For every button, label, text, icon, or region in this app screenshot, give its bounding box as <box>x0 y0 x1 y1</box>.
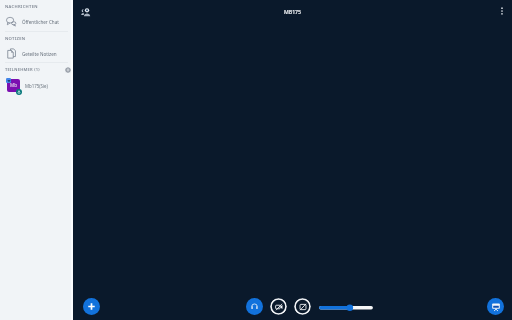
button[interactable]: Einstellungen <box>64 66 72 74</box>
staticText: Öffentlicher Chat <box>22 19 59 25</box>
button[interactable]: Geteilte Notizen <box>0 46 73 61</box>
button[interactable]: Mehr Optionen <box>494 3 509 18</box>
button[interactable]: Aktionen <box>83 298 100 315</box>
button[interactable]: Audio <box>246 298 263 315</box>
staticText: Mb175(Sie) <box>25 83 48 89</box>
staticText: Geteilte Notizen <box>22 51 57 57</box>
staticText: MB175 <box>284 8 302 15</box>
staticText: NOTIZEN <box>5 36 26 42</box>
button[interactable]: Bildschirm teilen <box>294 298 311 315</box>
button[interactable]: Lautstärke <box>319 301 373 313</box>
button[interactable]: Öffentlicher Chat <box>0 14 73 29</box>
button[interactable]: Präsentation <box>487 298 504 315</box>
staticText: Mb <box>10 82 17 88</box>
button[interactable]: Teilnehmer <box>78 4 93 19</box>
staticText: TEILNEHMER (1) <box>5 67 40 73</box>
button[interactable]: Mb <box>0 77 73 94</box>
staticText: NACHRICHTEN <box>5 4 38 10</box>
button[interactable]: Kamera <box>270 298 287 315</box>
